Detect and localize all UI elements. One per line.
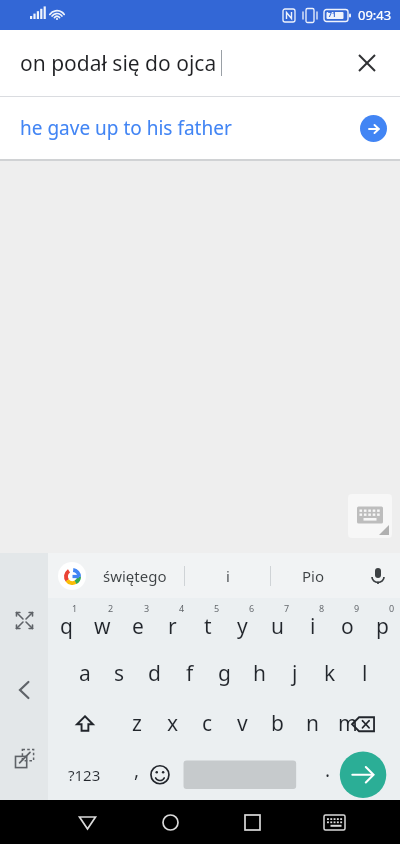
staticText: t bbox=[204, 612, 212, 641]
button[interactable]: 1 bbox=[48, 598, 84, 648]
staticText: p bbox=[376, 612, 389, 641]
staticText: m bbox=[338, 709, 358, 738]
staticText: l bbox=[362, 659, 368, 688]
button[interactable]: he gave up to his father bbox=[0, 97, 400, 159]
button[interactable]: Clear text bbox=[347, 43, 387, 83]
staticText: Pio bbox=[302, 566, 325, 586]
button[interactable]: f bbox=[172, 648, 207, 698]
button[interactable]: 8 bbox=[295, 598, 330, 648]
staticText: 2 bbox=[108, 602, 114, 614]
staticText: o bbox=[341, 612, 354, 641]
button[interactable]: x bbox=[155, 698, 190, 749]
staticText: n bbox=[306, 709, 319, 738]
button[interactable]: 4 bbox=[155, 598, 190, 648]
staticText: h bbox=[253, 659, 266, 688]
button[interactable]: , bbox=[120, 749, 154, 800]
staticText: 3 bbox=[144, 602, 150, 614]
staticText: d bbox=[148, 659, 161, 688]
button[interactable]: b bbox=[260, 698, 295, 749]
button[interactable]: Hide keyboard bbox=[293, 800, 375, 844]
staticText: 5 bbox=[214, 602, 220, 614]
button[interactable]: a bbox=[67, 648, 102, 698]
button[interactable]: Pio bbox=[271, 553, 356, 598]
button[interactable]: h bbox=[242, 648, 277, 698]
staticText: 9 bbox=[354, 602, 360, 614]
button[interactable]: świętego bbox=[86, 553, 184, 598]
staticText: świętego bbox=[103, 566, 167, 586]
staticText: f bbox=[186, 659, 194, 688]
button[interactable]: 0 bbox=[365, 598, 400, 648]
button[interactable]: Enter bbox=[345, 749, 400, 800]
button[interactable]: k bbox=[312, 648, 347, 698]
button[interactable]: Use translation bbox=[360, 115, 387, 142]
button[interactable]: m bbox=[330, 698, 365, 749]
button[interactable]: 7 bbox=[260, 598, 295, 648]
staticText: w bbox=[94, 612, 111, 641]
staticText: b bbox=[271, 709, 284, 738]
button[interactable]: d bbox=[137, 648, 172, 698]
button[interactable]: i bbox=[185, 553, 270, 598]
button[interactable]: 9 bbox=[330, 598, 365, 648]
staticText: i bbox=[310, 612, 316, 641]
staticText: s bbox=[114, 659, 125, 688]
staticText: i bbox=[226, 566, 230, 586]
staticText: x bbox=[167, 709, 179, 738]
button[interactable]: 3 bbox=[120, 598, 155, 648]
button[interactable]: Show keyboard bbox=[348, 494, 392, 538]
staticText: 0 bbox=[389, 602, 395, 614]
staticText: . bbox=[325, 757, 331, 783]
button[interactable]: c bbox=[190, 698, 225, 749]
staticText: v bbox=[237, 709, 248, 738]
button[interactable]: . bbox=[311, 749, 345, 800]
staticText: c bbox=[202, 709, 213, 738]
staticText: 71 bbox=[328, 10, 337, 20]
button[interactable]: Google bbox=[58, 562, 86, 590]
staticText: 6 bbox=[249, 602, 255, 614]
staticText: on podał się do ojca bbox=[20, 49, 217, 78]
button[interactable]: Recent apps bbox=[211, 800, 293, 844]
button[interactable]: ?123 bbox=[48, 749, 120, 800]
staticText: 4 bbox=[179, 602, 185, 614]
button[interactable]: Move keyboard left bbox=[5, 671, 43, 709]
button[interactable]: Back bbox=[46, 800, 129, 844]
button[interactable]: 6 bbox=[225, 598, 260, 648]
button[interactable]: j bbox=[277, 648, 312, 698]
button[interactable]: n bbox=[295, 698, 330, 749]
staticText: j bbox=[292, 659, 298, 688]
button[interactable]: Undock keyboard bbox=[5, 739, 43, 777]
button[interactable]: 5 bbox=[190, 598, 225, 648]
button[interactable]: Shift bbox=[48, 698, 119, 749]
button[interactable]: s bbox=[102, 648, 137, 698]
staticText: u bbox=[271, 612, 284, 641]
staticText: , bbox=[134, 757, 140, 783]
button[interactable]: Home bbox=[129, 800, 211, 844]
button[interactable]: Resize keyboard bbox=[5, 601, 43, 639]
staticText: e bbox=[132, 612, 144, 641]
staticText: r bbox=[168, 612, 177, 641]
button[interactable]: Emoji bbox=[154, 749, 188, 800]
staticText: 7 bbox=[284, 602, 290, 614]
staticText: y bbox=[237, 612, 248, 641]
staticText: z bbox=[132, 709, 142, 738]
staticText: ?123 bbox=[68, 765, 101, 785]
staticText: he gave up to his father bbox=[20, 115, 232, 141]
button[interactable]: g bbox=[207, 648, 242, 698]
button[interactable]: z bbox=[119, 698, 155, 749]
button[interactable]: 2 bbox=[84, 598, 120, 648]
staticText: 1 bbox=[72, 602, 78, 614]
staticText: k bbox=[324, 659, 336, 688]
button[interactable]: v bbox=[225, 698, 260, 749]
staticText: a bbox=[79, 659, 91, 688]
staticText: q bbox=[60, 612, 73, 641]
button[interactable]: Backspace bbox=[365, 698, 400, 749]
button[interactable]: l bbox=[347, 648, 382, 698]
button[interactable]: Voice input bbox=[356, 553, 400, 598]
staticText: g bbox=[218, 659, 231, 688]
staticText: 09:43 bbox=[358, 6, 392, 24]
button[interactable]: Space bbox=[188, 749, 311, 800]
staticText: 8 bbox=[319, 602, 325, 614]
